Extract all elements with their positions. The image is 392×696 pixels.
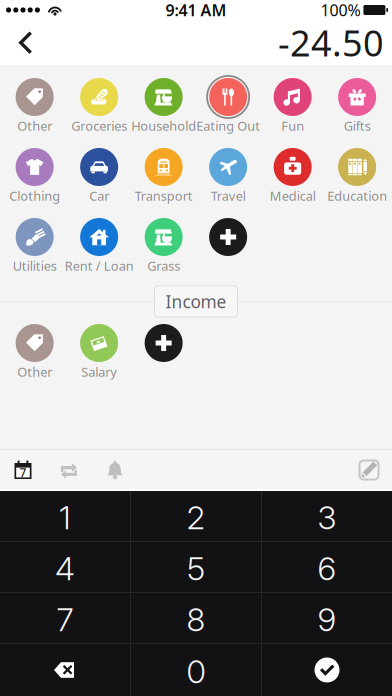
staticText: Transport [135,187,193,204]
staticText: Travel [211,187,246,204]
button[interactable]: 1 [0,491,130,541]
button[interactable]: Eating Out [196,73,260,143]
staticText: Household [131,117,196,134]
staticText: 1 [59,498,71,537]
staticText: 2 [186,498,205,537]
staticText: Fun [281,117,304,134]
button[interactable]: Clothing [2,143,67,213]
button[interactable]: Medical [260,143,325,213]
staticText: -24.50 [278,19,384,66]
staticText: 8 [186,600,205,639]
staticText: Other [17,117,52,134]
staticText: Education [327,187,387,204]
staticText: 100% [320,0,360,21]
staticText: Groceries [71,117,127,134]
button[interactable]: Salary [67,319,131,389]
button[interactable]: Education [325,143,389,213]
button[interactable]: Note [346,451,392,489]
staticText: Grass [147,257,180,274]
button[interactable]: 9 [262,593,392,643]
button[interactable]: Other [2,73,67,143]
staticText: 0 [186,652,205,691]
button[interactable]: Groceries [67,73,131,143]
button[interactable]: 5 [131,542,261,592]
button[interactable]: Gifts [325,73,389,143]
staticText: Income [165,290,226,313]
button[interactable]: 3 [262,491,392,541]
button[interactable]: Rent / Loan [67,213,131,283]
button[interactable]: Transport [131,143,196,213]
button[interactable]: Confirm [262,644,392,696]
button[interactable]: 2 [131,491,261,541]
button[interactable]: Income [154,286,237,317]
button[interactable]: Back [0,21,47,63]
staticText: 7 [19,464,26,480]
staticText: Clothing [9,187,60,204]
button[interactable]: Add category [131,319,196,389]
button[interactable]: Fun [260,73,325,143]
button[interactable]: 6 [262,542,392,592]
staticText: 4 [55,549,75,588]
staticText: Rent / Loan [65,257,134,274]
staticText: 5 [187,549,205,588]
staticText: Car [89,187,109,204]
staticText: Eating Out [196,117,260,134]
button[interactable]: 4 [0,542,130,592]
button[interactable]: 0 [131,644,261,696]
staticText: 9:41 AM [165,0,226,21]
staticText: 3 [317,498,336,537]
button[interactable]: Add category [196,213,260,283]
button[interactable]: Car [67,143,131,213]
button[interactable]: Other [2,319,67,389]
button[interactable]: Travel [196,143,260,213]
button[interactable]: Reminder [92,451,138,489]
button[interactable]: Date [0,451,46,489]
button[interactable]: Household [131,73,196,143]
button[interactable]: Delete [0,644,130,696]
staticText: Utilities [13,257,57,274]
button[interactable]: Utilities [2,213,67,283]
button[interactable]: Repeat [46,451,92,489]
button[interactable]: 8 [131,593,261,643]
staticText: 6 [317,549,336,588]
staticText: 7 [56,600,73,639]
staticText: Other [17,363,52,380]
button[interactable]: Grass [131,213,196,283]
button[interactable]: 7 [0,593,130,643]
staticText: 9 [317,600,336,639]
staticText: Gifts [344,117,371,134]
staticText: Salary [81,363,117,380]
staticText: Medical [270,187,316,204]
